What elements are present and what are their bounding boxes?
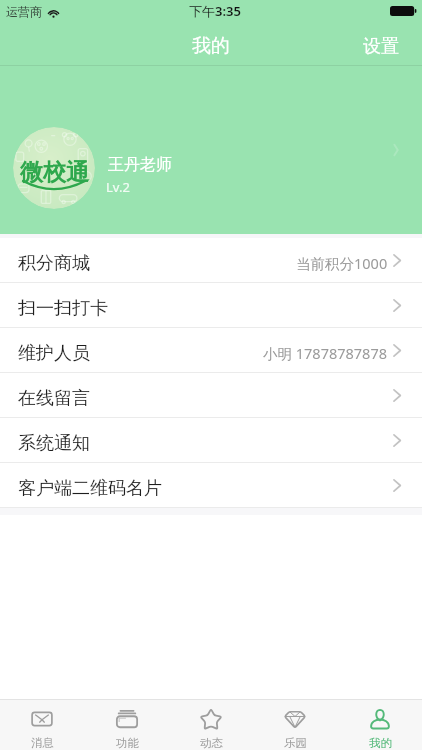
staticText: 小明 17878787878	[263, 343, 388, 363]
button[interactable]: 维护人员	[0, 328, 422, 373]
button[interactable]: 动态	[169, 700, 253, 750]
button[interactable]: 微校通	[0, 66, 422, 234]
staticText: Lv.2	[106, 178, 130, 196]
staticText: 动态	[200, 736, 223, 750]
staticText: 维护人员	[18, 342, 90, 365]
button[interactable]: 在线留言	[0, 373, 422, 418]
button[interactable]: 扫一扫打卡	[0, 283, 422, 328]
staticText: 扫一扫打卡	[18, 297, 108, 320]
staticText: 王丹老师	[108, 155, 172, 175]
staticText: 我的	[369, 736, 392, 750]
button[interactable]: 系统通知	[0, 418, 422, 463]
staticText: 客户端二维码名片	[18, 477, 162, 500]
button[interactable]: 设置	[349, 26, 422, 65]
staticText: 消息	[31, 736, 54, 750]
staticText: 下午3:35	[189, 2, 241, 20]
staticText: 当前积分1000	[296, 253, 388, 273]
staticText: 系统通知	[18, 432, 90, 455]
button[interactable]: 积分商城	[0, 238, 422, 283]
staticText: 运营商	[6, 4, 42, 19]
staticText: 在线留言	[18, 387, 90, 410]
button[interactable]: 消息	[0, 700, 84, 750]
staticText: 微校通	[20, 158, 89, 187]
staticText: 功能	[116, 736, 139, 750]
staticText: 我的	[192, 34, 230, 58]
staticText: 设置	[363, 35, 399, 56]
staticText: 乐园	[284, 736, 307, 750]
button[interactable]: 功能	[85, 700, 169, 750]
button[interactable]: 我的	[338, 700, 422, 750]
button[interactable]: 乐园	[253, 700, 337, 750]
button[interactable]: 客户端二维码名片	[0, 463, 422, 508]
staticText: 积分商城	[18, 252, 90, 275]
